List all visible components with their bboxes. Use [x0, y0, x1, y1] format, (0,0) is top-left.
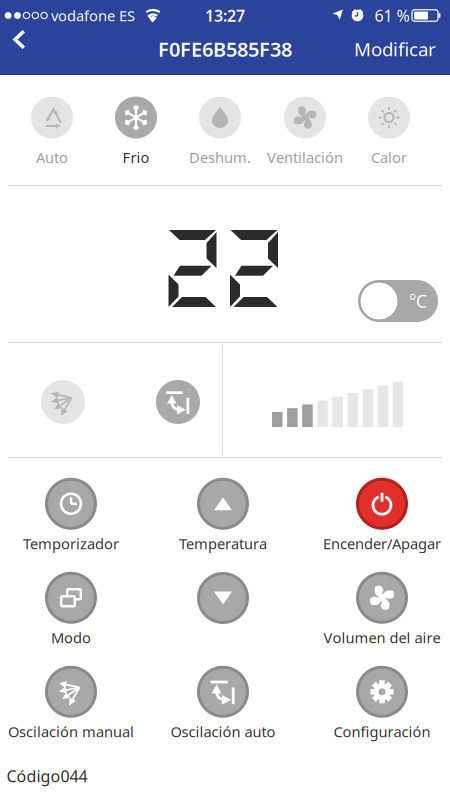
- button[interactable]: Deshum.: [189, 96, 251, 167]
- button[interactable]: Oscilación manual: [8, 666, 134, 741]
- staticText: F0FE6B585F38: [158, 36, 292, 62]
- button[interactable]: Calor: [368, 96, 410, 167]
- button[interactable]: Bajar temperatura: [197, 572, 249, 624]
- button[interactable]: Temperatura: [179, 478, 267, 553]
- staticText: 13:27: [205, 5, 245, 26]
- button[interactable]: Configuración: [333, 666, 430, 741]
- staticText: 61 %: [374, 5, 409, 26]
- staticText: Código044: [6, 765, 87, 787]
- button[interactable]: Oscilación auto: [156, 380, 200, 424]
- staticText: °C: [409, 289, 427, 312]
- button[interactable]: Atrás: [12, 39, 25, 58]
- button[interactable]: Oscilación manual: [41, 380, 85, 424]
- button[interactable]: Auto: [31, 96, 73, 167]
- button[interactable]: Velocidad del ventilador: [272, 381, 408, 427]
- staticText: Configuración: [333, 722, 430, 741]
- button[interactable]: Celsius: [358, 280, 438, 322]
- button[interactable]: Encender/Apagar: [323, 478, 441, 553]
- button[interactable]: Ventilación: [267, 96, 343, 167]
- button[interactable]: Modificar: [354, 37, 436, 61]
- staticText: Deshum.: [189, 147, 251, 167]
- button[interactable]: Frio: [115, 96, 157, 167]
- staticText: Modo: [51, 628, 91, 647]
- staticText: Volumen del aire: [323, 628, 440, 647]
- staticText: Auto: [36, 147, 68, 167]
- staticText: Ventilación: [267, 147, 343, 167]
- staticText: Oscilación manual: [8, 722, 134, 741]
- staticText: Oscilación auto: [170, 722, 275, 741]
- staticText: Temporizador: [23, 534, 119, 553]
- staticText: Calor: [371, 147, 407, 167]
- button[interactable]: Temporizador: [23, 478, 119, 553]
- button[interactable]: Oscilación auto: [170, 666, 275, 741]
- button[interactable]: Volumen del aire: [323, 572, 440, 647]
- staticText: Modificar: [354, 37, 436, 61]
- staticText: vodafone ES: [51, 6, 135, 25]
- button[interactable]: Modo: [45, 572, 97, 647]
- staticText: Encender/Apagar: [323, 534, 441, 553]
- staticText: Temperatura: [179, 534, 267, 553]
- staticText: Frio: [122, 147, 149, 167]
